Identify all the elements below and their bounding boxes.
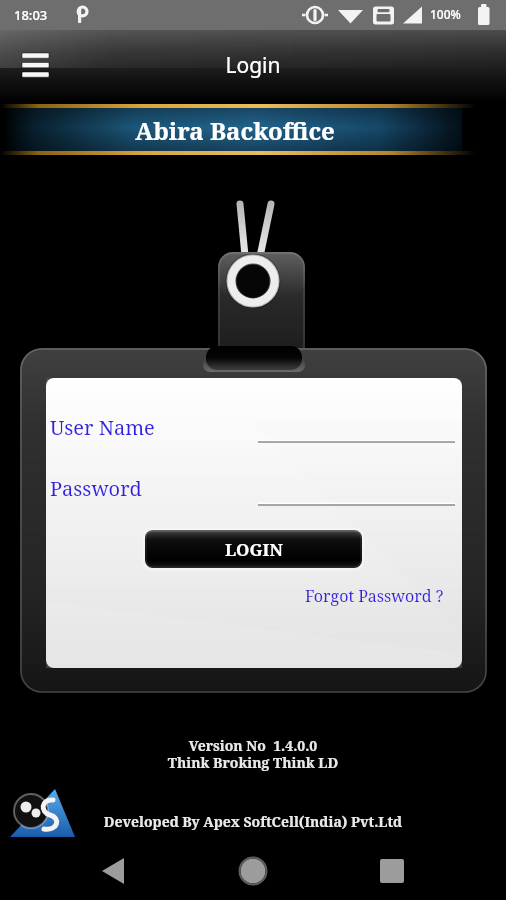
staticText: Password bbox=[50, 475, 142, 502]
staticText: Developed By Apex SoftCell(India) Pvt.Lt… bbox=[0, 812, 506, 832]
button[interactable]: Recent apps bbox=[362, 846, 422, 900]
button[interactable]: LOGIN bbox=[145, 530, 362, 568]
button[interactable]: Back bbox=[83, 846, 143, 900]
staticText: Version No 1.4.0.0 bbox=[0, 736, 506, 754]
button[interactable]: Open navigation menu bbox=[8, 44, 62, 82]
button[interactable]: Home bbox=[223, 846, 283, 900]
staticText: User Name bbox=[50, 414, 155, 441]
staticText: LOGIN bbox=[225, 538, 283, 561]
button[interactable]: Forgot Password ? bbox=[288, 583, 460, 609]
staticText: Think Broking Think LD bbox=[0, 753, 506, 771]
button[interactable]: Password input bbox=[256, 475, 458, 507]
staticText: Forgot Password ? bbox=[305, 585, 444, 607]
staticText: Login bbox=[0, 51, 506, 81]
button[interactable]: User Name input bbox=[256, 412, 458, 444]
staticText: Abira Backoffice bbox=[0, 114, 470, 148]
staticText: 100% bbox=[430, 6, 461, 22]
staticText: 18:03 bbox=[14, 6, 48, 24]
